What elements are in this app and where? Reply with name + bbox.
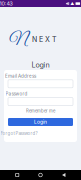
- staticText: N E X T: [32, 35, 57, 44]
- staticText: Login: [31, 61, 49, 69]
- staticText: Login: [34, 119, 47, 125]
- button[interactable]: Forgot Password?: [0, 131, 37, 136]
- staticText: Email Address: [5, 73, 36, 79]
- staticText: Remember me: [26, 108, 55, 114]
- staticText: 10:43: [0, 0, 12, 7]
- staticText: Forgot Password?: [0, 131, 37, 136]
- button[interactable]: Back: [58, 170, 70, 180]
- button[interactable]: Login: [8, 118, 73, 126]
- staticText: ▲: [70, 1, 74, 6]
- button[interactable]: Recent apps: [11, 170, 23, 180]
- staticText: Password: [5, 91, 27, 97]
- button[interactable]: Home: [34, 170, 46, 180]
- staticText: N: [9, 29, 27, 50]
